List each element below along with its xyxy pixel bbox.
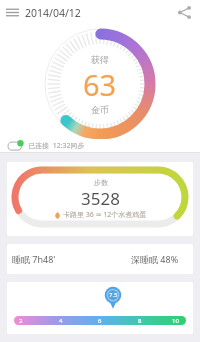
staticText: 卡路里 36 ≈ 12个水煮鸡蛋 [63, 210, 147, 220]
staticText: 获得 [91, 54, 109, 65]
staticText: 7.5 [109, 291, 118, 299]
staticText: 8 [138, 317, 142, 325]
button[interactable]: 步数 [7, 162, 193, 236]
staticText: 睡眠 7h48' [12, 253, 56, 265]
staticText: 10 [172, 317, 179, 325]
staticText: 2 [19, 317, 23, 325]
staticText: 4 [59, 317, 63, 325]
button[interactable] [0, 0, 25, 25]
staticText: 已连接 12:32同步 [28, 141, 85, 151]
staticText: 63 [83, 65, 117, 104]
staticText: 6 [98, 317, 102, 325]
staticText: 深睡眠 48% [131, 253, 179, 265]
button[interactable]: 睡眠 7h48' [7, 244, 193, 274]
staticText: 3528 [81, 187, 120, 210]
staticText: 2014/04/12 [25, 6, 81, 20]
button[interactable]: 2 [7, 282, 193, 334]
button[interactable]: 已连接 12:32同步 [0, 139, 200, 152]
button[interactable] [170, 0, 198, 25]
staticText: 金币 [91, 104, 109, 115]
staticText: 步数 [94, 178, 108, 187]
button[interactable]: 2014/04/12 [0, 0, 200, 25]
